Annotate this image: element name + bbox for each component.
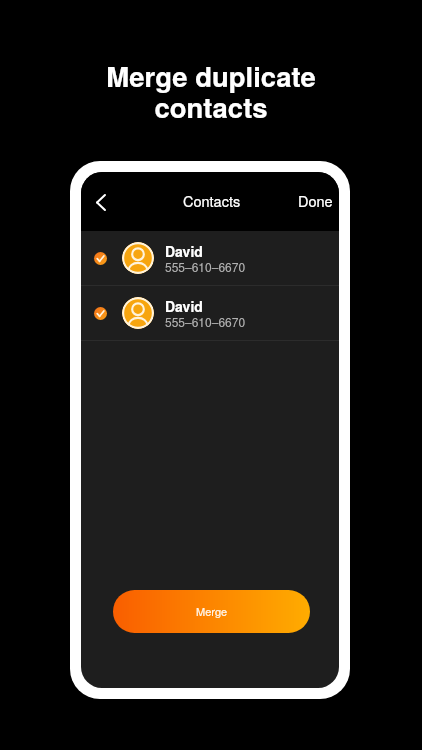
staticText: David xyxy=(165,241,203,261)
button[interactable]: Done xyxy=(291,182,339,219)
button[interactable]: Back xyxy=(86,187,116,217)
staticText: 555–610–6670 xyxy=(165,258,246,275)
staticText: David xyxy=(165,296,203,316)
staticText: Contacts xyxy=(183,190,241,211)
staticText: Merge duplicate contacts xyxy=(0,56,422,127)
staticText: 555–610–6670 xyxy=(165,313,246,330)
button[interactable]: David xyxy=(81,286,339,340)
staticText: Done xyxy=(298,190,333,211)
button[interactable]: Merge xyxy=(113,590,310,633)
button[interactable]: David xyxy=(81,231,339,285)
staticText: Merge xyxy=(196,603,228,619)
